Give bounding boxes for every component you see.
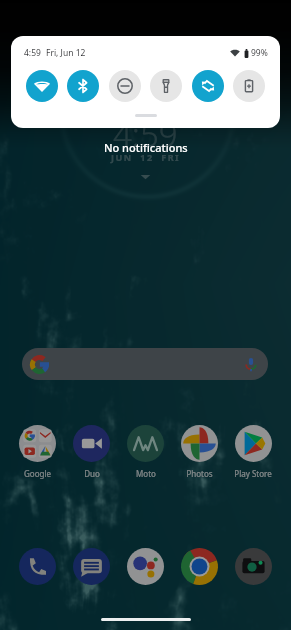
button[interactable]: Play Store [226, 425, 280, 479]
staticText: Google [24, 468, 51, 479]
button[interactable]: Phone [10, 548, 64, 585]
staticText: 4:59 [113, 112, 178, 157]
button[interactable]: Auto rotate [192, 70, 224, 102]
button[interactable]: Bluetooth [67, 70, 99, 102]
button[interactable]: Battery Saver [233, 70, 265, 102]
button[interactable]: Photos [172, 425, 226, 479]
button[interactable]: Flashlight [150, 70, 182, 102]
staticText: No notifications [104, 140, 188, 155]
staticText: Fri, Jun 12 [46, 47, 86, 59]
button[interactable]: Moto [118, 425, 172, 479]
button[interactable]: Assistant [118, 548, 172, 585]
button[interactable]: Messages [64, 548, 118, 585]
button[interactable]: Chrome [172, 548, 226, 585]
button[interactable]: Do not disturb [109, 70, 141, 102]
button[interactable]: Google Search [22, 348, 268, 380]
staticText: JUN 12 FRI [111, 151, 181, 163]
button[interactable]: Google [10, 425, 64, 479]
staticText: Moto [136, 468, 156, 479]
staticText: Duo [84, 468, 100, 479]
button[interactable]: Wi-Fi [26, 70, 58, 102]
staticText: Play Store [234, 468, 272, 479]
button[interactable]: Duo [64, 425, 118, 479]
button[interactable]: Camera [226, 548, 280, 585]
staticText: 99% [251, 47, 268, 59]
staticText: Photos [186, 468, 213, 479]
staticText: 4:59 [24, 47, 41, 59]
